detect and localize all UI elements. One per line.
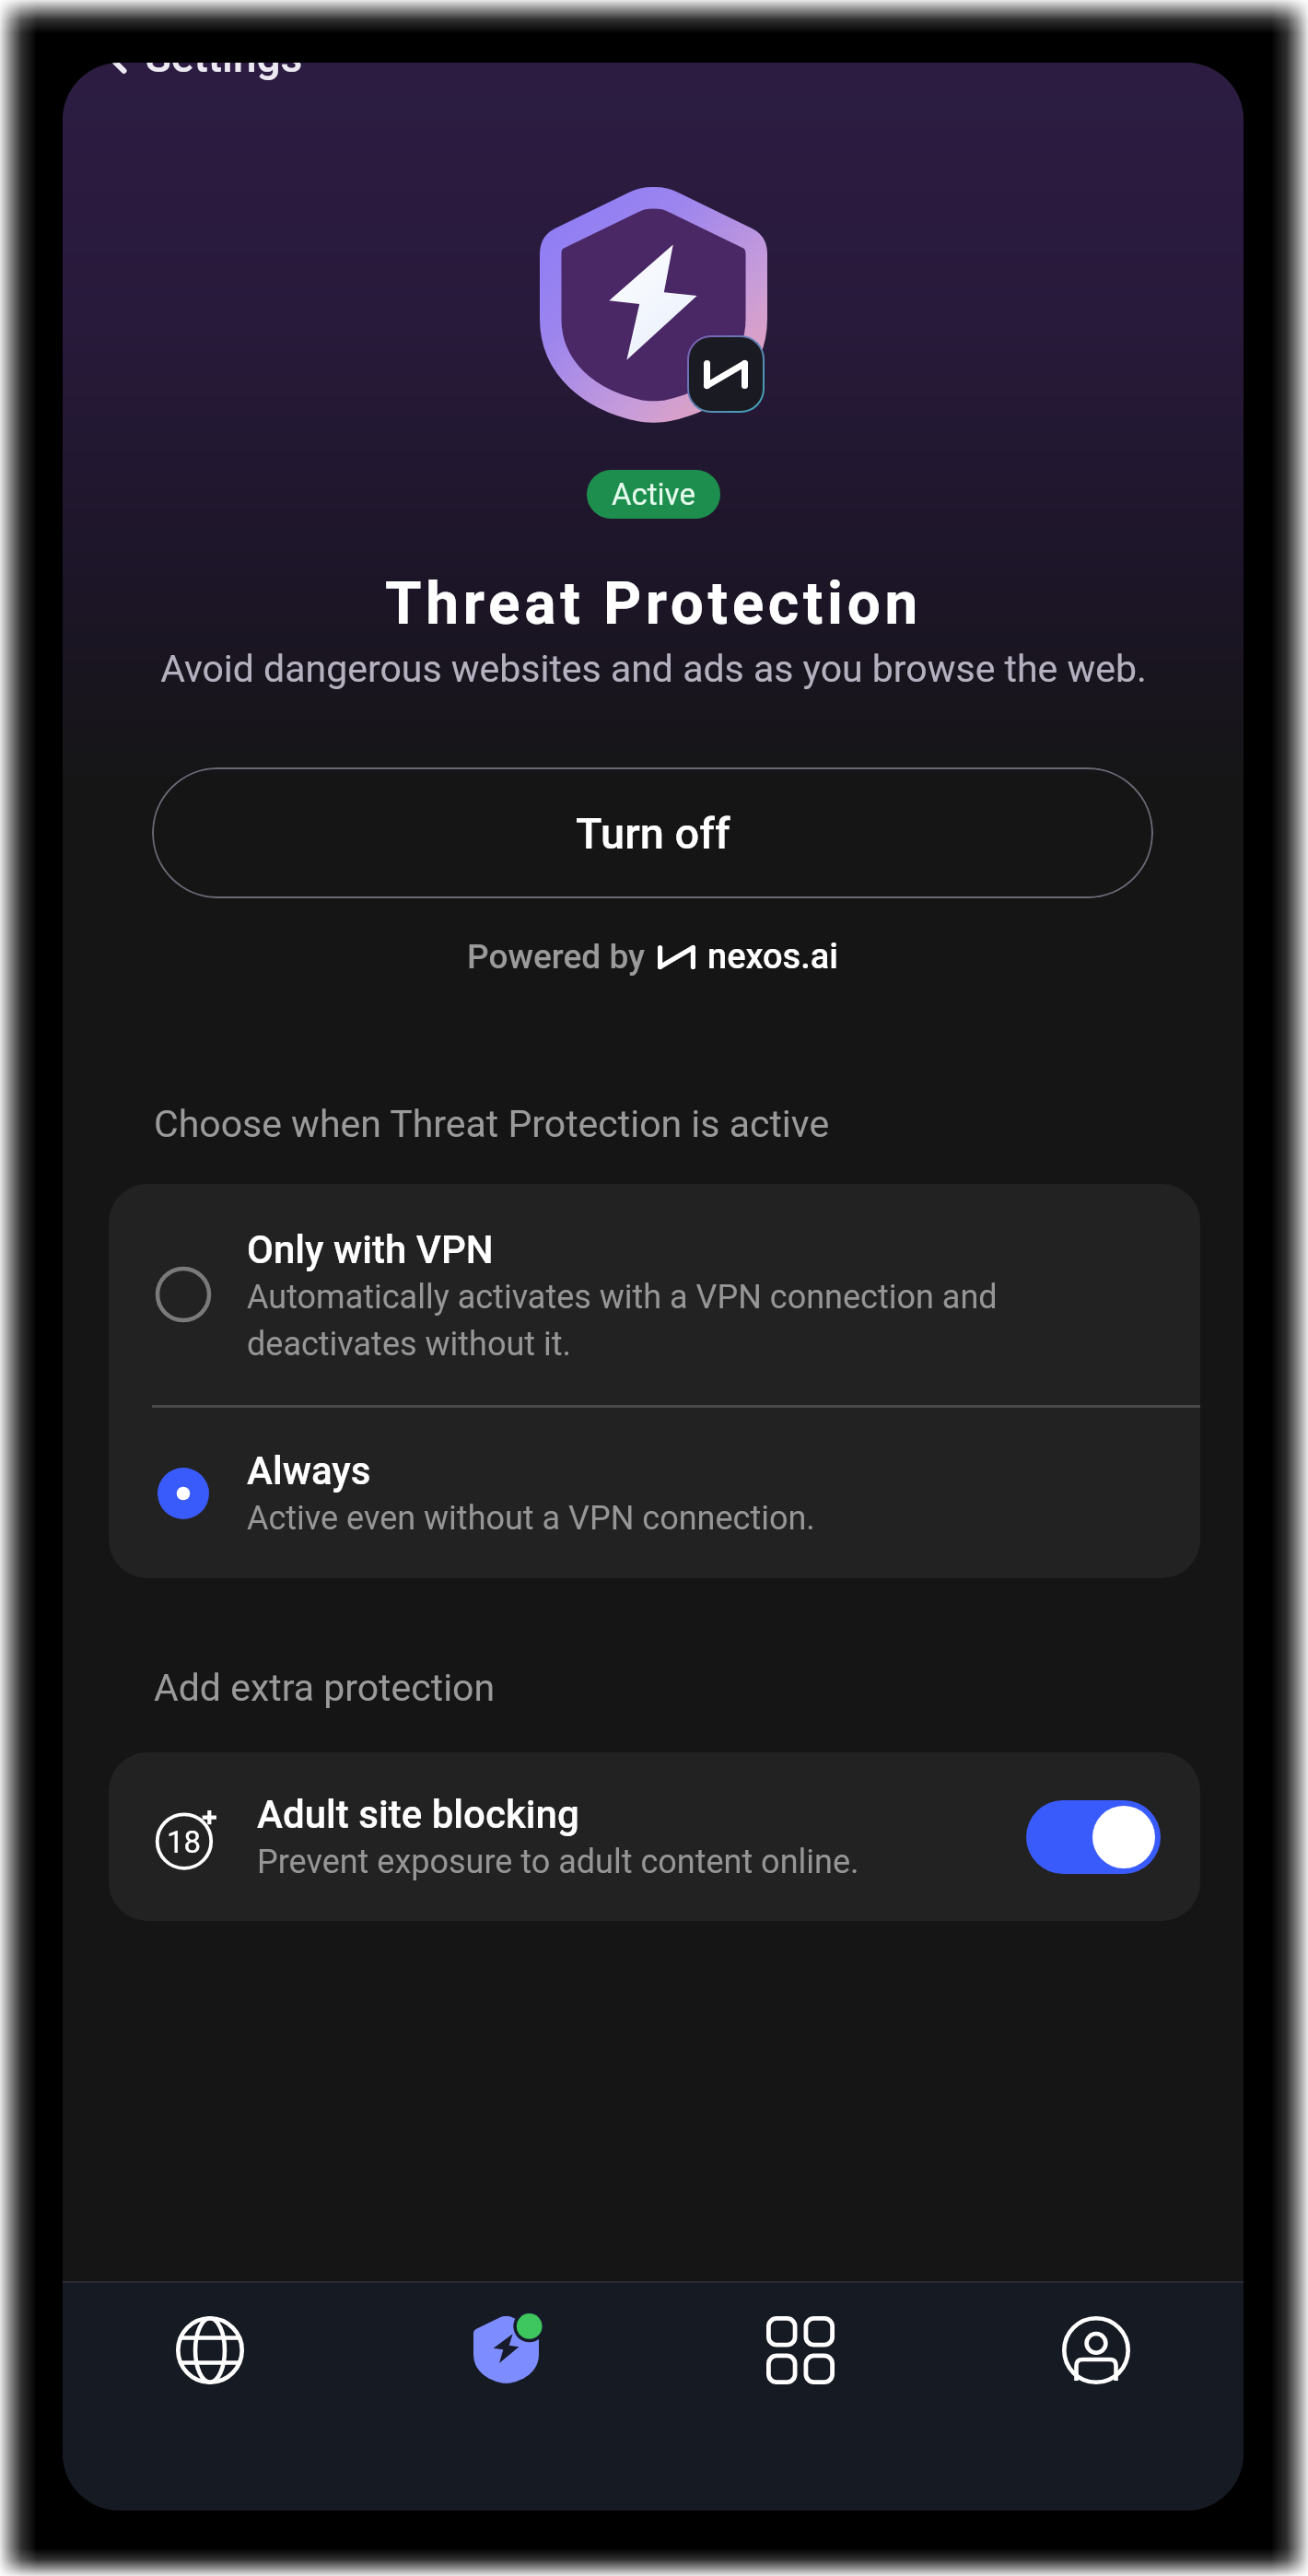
staticText: Active even without a VPN connection. (247, 1499, 815, 1538)
staticText: 18 (167, 1824, 202, 1860)
staticText: Threat Protection (385, 569, 922, 638)
button[interactable]: Profile (949, 2283, 1244, 2511)
button[interactable]: Only with VPN (109, 1184, 1200, 1405)
button[interactable]: Adult site blocking toggle (1026, 1800, 1161, 1874)
staticText: Active (612, 476, 695, 512)
button[interactable]: 18 (109, 1752, 1200, 1921)
button[interactable]: Threat Protection (358, 2283, 653, 2511)
staticText: Avoid dangerous websites and ads as you … (160, 647, 1147, 691)
button[interactable]: Active (587, 470, 720, 519)
button[interactable]: Apps (653, 2283, 948, 2511)
staticText: nexos.ai (707, 936, 839, 978)
staticText: Powered by (467, 937, 646, 977)
button[interactable]: Turn off (152, 767, 1153, 898)
button[interactable]: Back to Settings (101, 63, 303, 83)
staticText: Turn off (576, 808, 730, 859)
staticText: Add extra protection (154, 1666, 496, 1710)
staticText: Adult site blocking (257, 1792, 579, 1837)
button[interactable]: Always (109, 1408, 1200, 1578)
staticText: Prevent exposure to adult content online… (257, 1843, 859, 1881)
staticText: Choose when Threat Protection is active (154, 1102, 830, 1146)
staticText: Settings (146, 63, 303, 82)
staticText: Automatically activates with a VPN conne… (247, 1278, 998, 1363)
staticText: Always (247, 1448, 371, 1493)
staticText: Only with VPN (247, 1227, 494, 1272)
button[interactable]: Browse (63, 2283, 357, 2511)
